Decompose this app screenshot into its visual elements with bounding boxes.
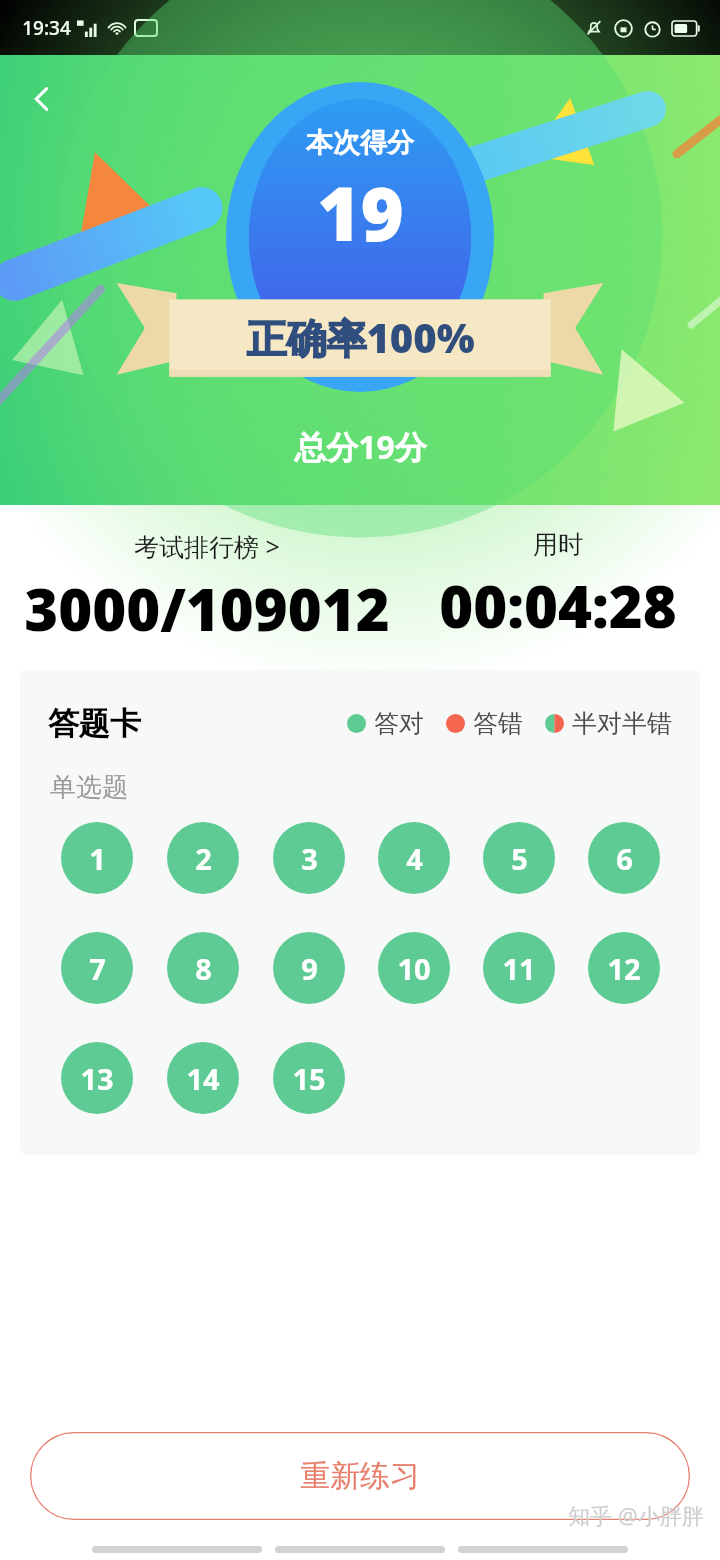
button[interactable]: 2 <box>167 822 239 894</box>
button[interactable]: 1 <box>61 822 133 894</box>
staticText: 13 <box>80 1059 114 1098</box>
button[interactable]: 重新练习 <box>30 1432 690 1520</box>
staticText: 重新练习 <box>300 1457 420 1495</box>
staticText: 12 <box>607 949 641 988</box>
button[interactable]: 12 <box>588 932 660 1004</box>
button[interactable]: 考试排行榜 > <box>134 529 280 563</box>
staticText: 14 <box>186 1059 220 1098</box>
button[interactable]: 9 <box>273 932 345 1004</box>
staticText: 总分19分 <box>294 425 427 469</box>
button[interactable]: 5 <box>483 822 555 894</box>
staticText: 5 <box>511 839 528 878</box>
staticText: 考试排行榜 > <box>134 529 280 563</box>
staticText: 答题卡 <box>48 704 141 743</box>
staticText: 1 <box>89 839 106 878</box>
button[interactable]: 11 <box>483 932 555 1004</box>
button[interactable]: 8 <box>167 932 239 1004</box>
staticText: 15 <box>292 1059 326 1098</box>
staticText: 3 <box>301 839 318 878</box>
button[interactable]: 7 <box>61 932 133 1004</box>
button[interactable]: 13 <box>61 1042 133 1114</box>
staticText: 10 <box>397 949 431 988</box>
button[interactable]: 6 <box>588 822 660 894</box>
staticText: 3000/109012 <box>24 569 390 648</box>
staticText: 用时 <box>533 529 583 560</box>
staticText: 答错 <box>473 708 523 739</box>
staticText: 7 <box>89 949 106 988</box>
staticText: 本次得分 <box>306 126 414 160</box>
button[interactable]: 10 <box>378 932 450 1004</box>
staticText: 9 <box>301 949 318 988</box>
staticText: 19:34 <box>22 15 71 41</box>
button[interactable]: Back <box>14 71 70 127</box>
staticText: 答对 <box>374 708 424 739</box>
staticText: 知乎 @小胖胖 <box>568 1500 704 1530</box>
staticText: 2 <box>195 839 212 878</box>
button[interactable]: 14 <box>167 1042 239 1114</box>
button[interactable]: 3 <box>273 822 345 894</box>
button[interactable]: 15 <box>273 1042 345 1114</box>
staticText: 6 <box>616 839 633 878</box>
button[interactable]: 答对 <box>347 708 424 739</box>
button[interactable]: 半对半错 <box>545 708 672 739</box>
staticText: 11 <box>502 949 536 988</box>
staticText: 正确率100% <box>246 310 475 365</box>
button[interactable]: 答错 <box>446 708 523 739</box>
button[interactable]: 4 <box>378 822 450 894</box>
staticText: 8 <box>195 949 212 988</box>
staticText: 4 <box>406 839 423 878</box>
staticText: 单选题 <box>50 771 128 804</box>
staticText: 00:04:28 <box>439 566 677 645</box>
staticText: 19 <box>317 162 404 263</box>
staticText: 半对半错 <box>572 708 672 739</box>
